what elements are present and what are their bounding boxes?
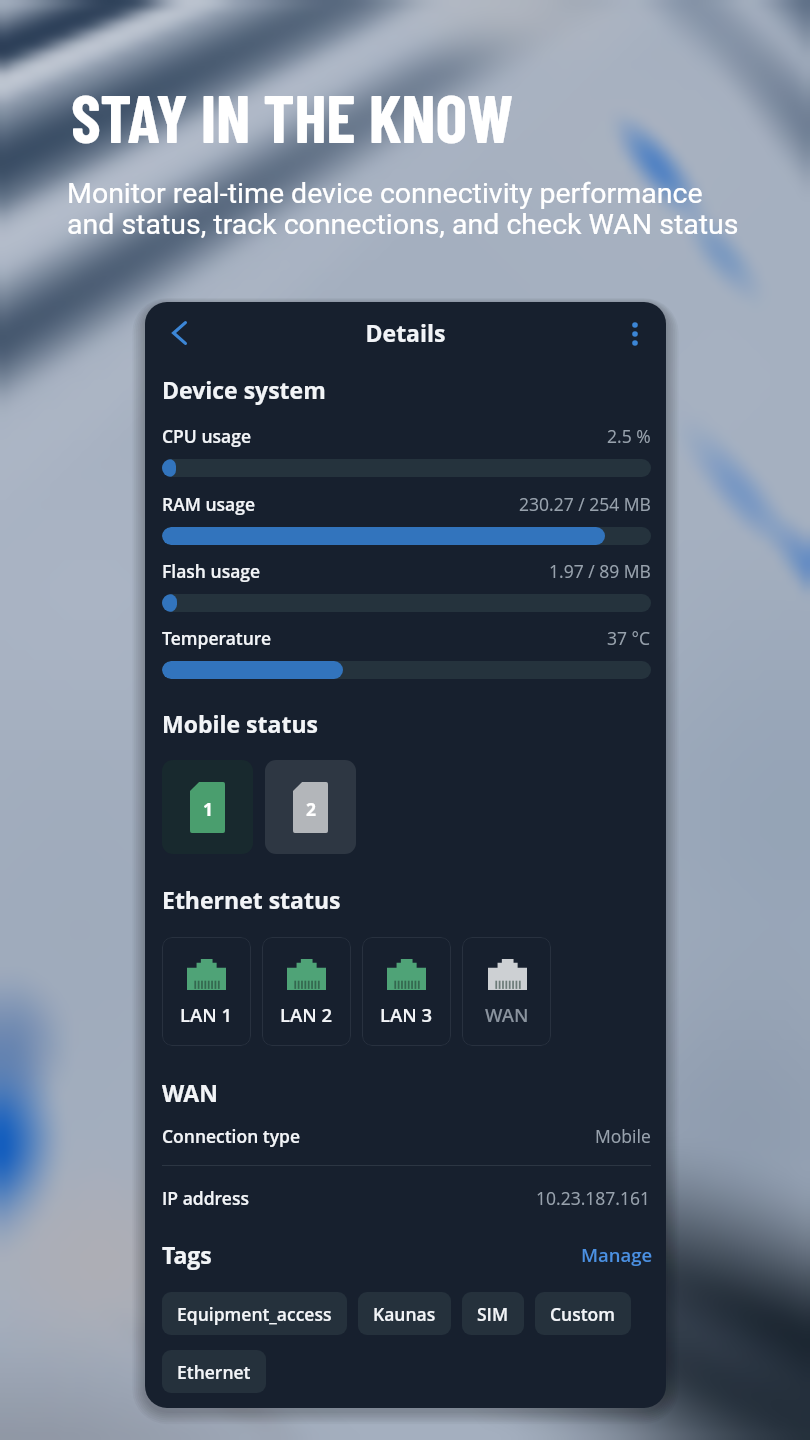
staticText: Mobile <box>595 1124 651 1148</box>
staticText: RAM usage <box>162 492 256 516</box>
button[interactable]: LAN 2 <box>262 937 351 1046</box>
staticText: Details <box>145 317 666 348</box>
button[interactable]: 1 <box>162 760 253 854</box>
button[interactable]: LAN 3 <box>362 937 451 1046</box>
staticText: Ethernet status <box>162 884 341 915</box>
staticText: 2.5 % <box>607 424 651 448</box>
staticText: 1 <box>203 797 213 821</box>
staticText: LAN 3 <box>380 1002 433 1027</box>
staticText: CPU usage <box>162 424 251 448</box>
staticText: Mobile status <box>162 708 318 739</box>
staticText: Ethernet <box>177 1360 251 1384</box>
button[interactable]: Manage <box>581 1242 653 1267</box>
staticText: Connection type <box>162 1124 301 1148</box>
staticText: STAY IN THE KNOW <box>71 76 513 156</box>
staticText: 230.27 / 254 MB <box>519 492 651 516</box>
staticText: Flash usage <box>162 559 261 583</box>
button[interactable]: Back <box>155 309 203 357</box>
button[interactable]: SIM <box>462 1292 524 1335</box>
staticText: Temperature <box>162 626 272 650</box>
staticText: IP address <box>162 1186 249 1210</box>
staticText: SIM <box>477 1302 509 1326</box>
staticText: WAN <box>162 1077 218 1108</box>
button[interactable]: 2 <box>265 760 356 854</box>
button[interactable]: Equipment_access <box>162 1292 347 1335</box>
button[interactable]: WAN <box>462 937 551 1046</box>
staticText: Custom <box>550 1302 616 1326</box>
staticText: Equipment_access <box>177 1302 332 1326</box>
staticText: 2 <box>306 797 316 821</box>
button[interactable]: Custom <box>535 1292 631 1335</box>
staticText: Monitor real-time device connectivity pe… <box>67 177 739 241</box>
staticText: Kaunas <box>373 1302 436 1326</box>
staticText: Tags <box>162 1239 212 1270</box>
button[interactable]: Ethernet <box>162 1350 266 1393</box>
staticText: 10.23.187.161 <box>536 1186 651 1210</box>
button[interactable]: Kaunas <box>358 1292 451 1335</box>
button[interactable]: LAN 1 <box>162 937 251 1046</box>
button[interactable]: More options <box>611 310 659 358</box>
staticText: LAN 2 <box>280 1002 333 1027</box>
staticText: WAN <box>485 1002 529 1027</box>
staticText: 1.97 / 89 MB <box>549 559 651 583</box>
staticText: 37 °C <box>607 626 651 650</box>
staticText: Device system <box>162 374 326 405</box>
staticText: LAN 1 <box>180 1002 233 1027</box>
